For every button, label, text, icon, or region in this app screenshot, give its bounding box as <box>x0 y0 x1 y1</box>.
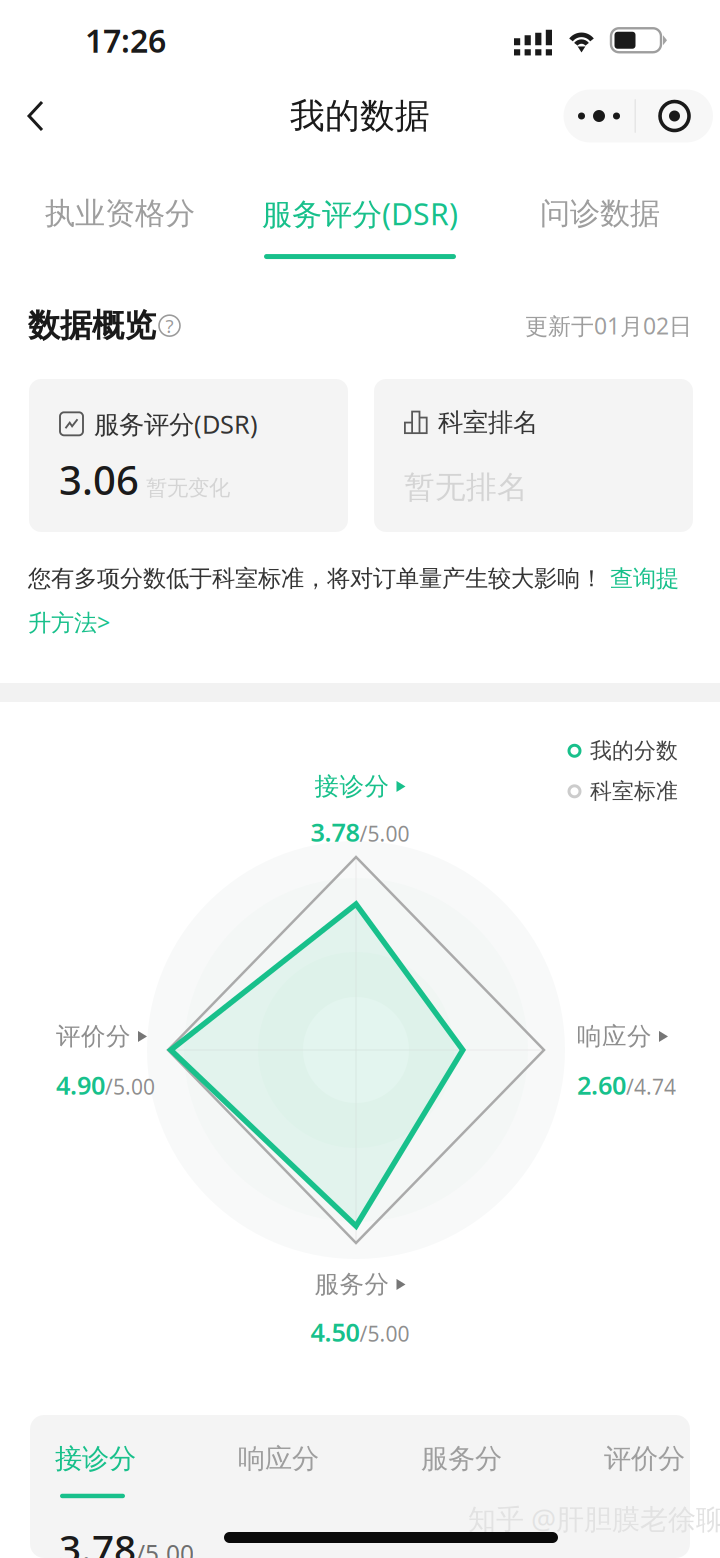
button[interactable]: 执业资格分 <box>0 182 240 269</box>
staticText: 4.90 <box>56 1068 105 1102</box>
button[interactable]: Close <box>636 89 713 142</box>
staticText: 暂无排名 <box>404 468 528 506</box>
staticText: 17:26 <box>85 19 166 61</box>
staticText: 我的分数 <box>590 737 678 764</box>
staticText: 数据概览 <box>28 306 156 345</box>
button[interactable]: 问诊数据 <box>480 182 720 269</box>
staticText: 服务分 <box>314 1269 389 1300</box>
staticText: 知乎 @肝胆膜老徐聊健康 <box>468 1500 720 1537</box>
button[interactable]: 科室排名 <box>374 379 693 532</box>
staticText: 暂无变化 <box>146 474 230 501</box>
staticText: 您有多项分数低于科室标准，将对订单量产生较大影响！ <box>28 564 603 593</box>
staticText: /4.74 <box>626 1072 676 1101</box>
button[interactable]: More <box>563 89 634 142</box>
staticText: /5.00 <box>359 1319 409 1348</box>
button[interactable]: 查询提 <box>603 564 679 593</box>
staticText: 接诊分 <box>314 771 389 802</box>
staticText: 我的数据 <box>290 95 430 137</box>
staticText: 响应分 <box>577 1021 652 1052</box>
staticText: 升方法> <box>28 606 110 638</box>
staticText: 科室标准 <box>590 777 678 805</box>
button[interactable]: 响应分 <box>238 1441 421 1498</box>
staticText: 3.06 <box>59 453 139 506</box>
staticText: 执业资格分 <box>45 194 195 232</box>
staticText: 科室排名 <box>438 407 538 438</box>
staticText: 3.78 <box>59 1522 136 1558</box>
button[interactable]: Back <box>14 87 58 145</box>
staticText: ? <box>165 313 173 338</box>
staticText: 接诊分 <box>55 1441 136 1476</box>
staticText: 响应分 <box>238 1441 319 1476</box>
button[interactable]: 评价分 <box>604 1441 720 1498</box>
staticText: 查询提 <box>603 564 679 593</box>
staticText: 服务分 <box>421 1441 502 1476</box>
staticText: 评价分 <box>56 1021 131 1052</box>
button[interactable]: Help <box>156 313 180 338</box>
staticText: 问诊数据 <box>540 194 660 232</box>
staticText: 评价分 <box>604 1441 685 1476</box>
button[interactable]: 接诊分 <box>55 1441 238 1498</box>
button[interactable]: 服务评分(DSR) <box>29 379 348 532</box>
staticText: 3.78 <box>310 815 359 849</box>
staticText: /5.00 <box>359 819 409 848</box>
button[interactable]: 服务分 <box>421 1441 604 1498</box>
button[interactable]: 升方法> <box>28 606 110 638</box>
staticText: 2.60 <box>577 1068 626 1102</box>
staticText: /5.00 <box>105 1072 155 1101</box>
staticText: 更新于01月02日 <box>525 310 692 341</box>
button[interactable]: 服务评分(DSR) <box>240 181 480 271</box>
staticText: 服务评分(DSR) <box>262 193 458 234</box>
staticText: 服务评分(DSR) <box>94 407 258 441</box>
staticText: /5.00 <box>136 1537 194 1558</box>
staticText: 4.50 <box>310 1315 359 1349</box>
